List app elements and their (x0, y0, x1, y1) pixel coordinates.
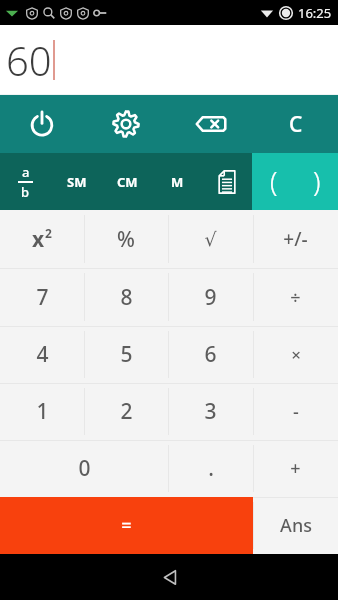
staticText: + (290, 456, 301, 481)
staticText: - (293, 399, 299, 424)
staticText: M (171, 173, 184, 191)
staticText: 0 (78, 454, 91, 483)
staticText: 8 (120, 283, 133, 312)
staticText: SM (67, 173, 87, 191)
staticText: a (22, 163, 30, 181)
button[interactable]: ) (295, 153, 338, 210)
staticText: +/- (283, 226, 308, 252)
button[interactable]: 6 (168, 326, 253, 383)
staticText: 16:25 (298, 4, 332, 22)
staticText: b (21, 183, 30, 201)
staticText: 4 (36, 340, 49, 369)
staticText: 3 (204, 397, 217, 426)
button[interactable]: CM (102, 153, 152, 210)
button[interactable]: . (168, 440, 253, 497)
staticText: ÷ (290, 285, 301, 310)
staticText: 1 (36, 397, 49, 426)
button[interactable]: + (253, 440, 338, 497)
button[interactable]: Back (139, 554, 199, 600)
button[interactable]: 5 (84, 326, 168, 383)
staticText: √ (204, 228, 217, 250)
button[interactable]: 1 (0, 383, 84, 440)
staticText: ( (270, 163, 278, 200)
staticText: 2 (45, 225, 52, 241)
button[interactable]: 3 (168, 383, 253, 440)
staticText: 7 (36, 283, 49, 312)
button[interactable]: 9 (168, 268, 253, 326)
button[interactable]: Power (0, 95, 84, 153)
staticText: = (121, 513, 132, 538)
button[interactable]: % (84, 210, 168, 268)
button[interactable]: SM (51, 153, 102, 210)
staticText: 9 (204, 283, 217, 312)
button[interactable]: x (0, 210, 84, 268)
button[interactable]: × (253, 326, 338, 383)
staticText: % (117, 225, 135, 254)
staticText: 5 (120, 340, 133, 369)
button[interactable]: C (253, 95, 338, 153)
staticText: × (291, 343, 301, 366)
button[interactable]: ÷ (253, 268, 338, 326)
staticText: 60 (6, 33, 52, 87)
staticText: CM (117, 173, 138, 191)
staticText: ) (313, 163, 321, 200)
button[interactable]: = (0, 497, 253, 554)
button[interactable]: - (253, 383, 338, 440)
button[interactable]: +/- (253, 210, 338, 268)
staticText: C (289, 110, 303, 139)
button[interactable]: √ (168, 210, 253, 268)
button[interactable]: 8 (84, 268, 168, 326)
button[interactable]: ( (252, 153, 295, 210)
staticText: Ans (280, 513, 312, 538)
staticText: 6 (204, 340, 217, 369)
button[interactable]: 2 (84, 383, 168, 440)
button[interactable]: Settings (84, 95, 168, 153)
staticText: x (32, 225, 45, 254)
button[interactable]: Fraction (0, 153, 51, 210)
staticText: . (208, 454, 214, 483)
button[interactable]: History (202, 153, 252, 210)
button[interactable]: Ans (253, 497, 338, 554)
button[interactable]: M (152, 153, 202, 210)
button[interactable]: Backspace (168, 95, 253, 153)
button[interactable]: 4 (0, 326, 84, 383)
staticText: 2 (120, 397, 133, 426)
button[interactable]: 7 (0, 268, 84, 326)
button[interactable]: 0 (0, 440, 168, 497)
